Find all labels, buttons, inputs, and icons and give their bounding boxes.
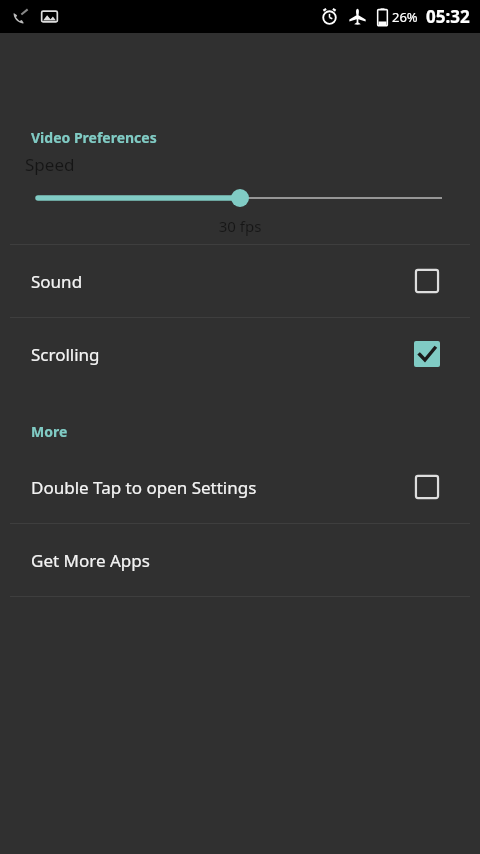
staticText: Sound	[31, 270, 414, 293]
button[interactable]	[0, 186, 480, 210]
staticText: Speed	[25, 153, 75, 176]
staticText: Scrolling	[31, 343, 414, 366]
staticText: Get More Apps	[31, 549, 150, 572]
staticText: 05:32	[426, 5, 470, 28]
staticText: More	[31, 422, 68, 441]
staticText: Double Tap to open Settings	[31, 476, 414, 499]
button[interactable]: Sound	[0, 245, 480, 317]
staticText: Video Preferences	[31, 128, 157, 147]
button[interactable]: Double Tap to open Settings	[0, 451, 480, 523]
button[interactable]: Get More Apps	[0, 524, 480, 596]
other: Unchecked	[414, 474, 440, 500]
other: Unchecked	[414, 268, 440, 294]
other: Checked	[414, 341, 440, 367]
button[interactable]: Scrolling	[0, 318, 480, 390]
staticText: 26%	[392, 8, 418, 26]
